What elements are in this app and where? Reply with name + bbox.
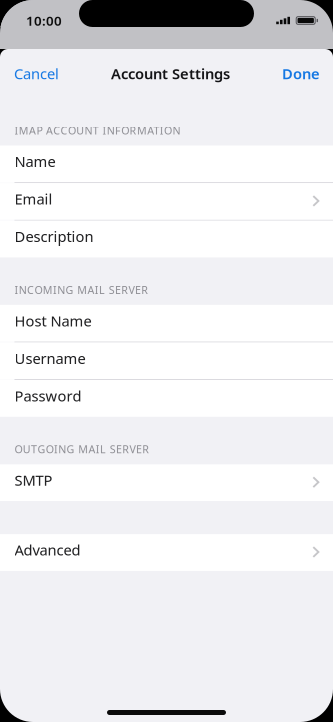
- button[interactable]: Email: [0, 183, 333, 220]
- staticText: Password: [14, 386, 81, 406]
- button[interactable]: Name: [0, 145, 333, 182]
- staticText: Account Settings: [111, 64, 230, 83]
- staticText: Advanced: [14, 540, 80, 560]
- staticText: Host Name: [14, 311, 91, 330]
- staticText: Done: [282, 64, 320, 83]
- staticText: INCOMING MAIL SERVER: [14, 283, 148, 297]
- staticText: 10:00: [26, 12, 62, 29]
- button[interactable]: Advanced: [0, 534, 333, 571]
- button[interactable]: Host Name: [0, 305, 333, 342]
- staticText: SMTP: [14, 470, 52, 490]
- staticText: Email: [14, 189, 52, 209]
- staticText: IMAP ACCOUNT INFORMATION: [14, 123, 180, 137]
- button[interactable]: SMTP: [0, 464, 333, 501]
- button[interactable]: Cancel: [0, 49, 69, 98]
- button[interactable]: Password: [0, 380, 333, 417]
- staticText: Username: [14, 348, 85, 368]
- button[interactable]: Username: [0, 342, 333, 379]
- staticText: Description: [14, 227, 93, 246]
- button[interactable]: Done: [272, 49, 333, 98]
- staticText: OUTGOING MAIL SERVER: [14, 442, 149, 456]
- staticText: Cancel: [14, 64, 59, 83]
- button[interactable]: Description: [0, 221, 333, 257]
- staticText: Name: [14, 152, 55, 171]
